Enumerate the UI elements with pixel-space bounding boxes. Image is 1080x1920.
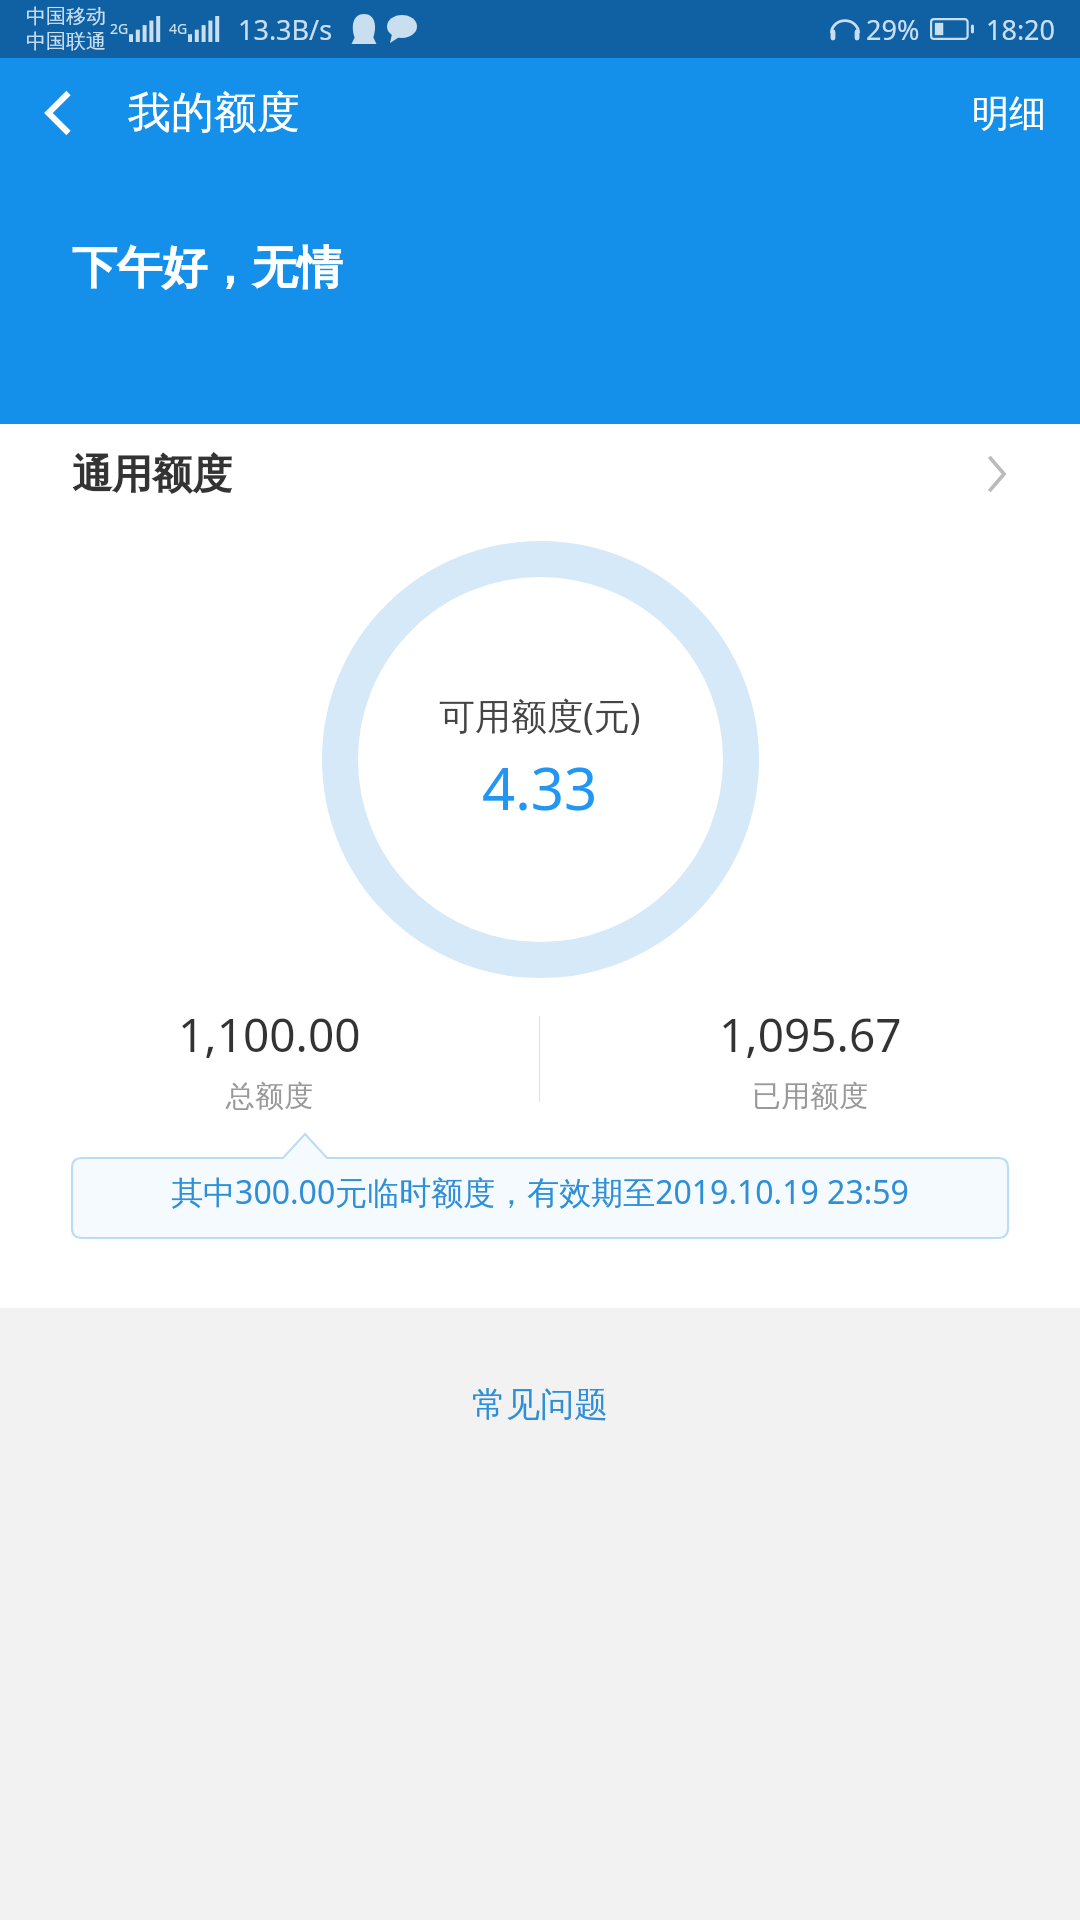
staticText: 13.3B/s [238,11,333,48]
staticText: 我的额度 [128,86,300,140]
staticText: 中国联通 [26,29,106,54]
staticText: 通用额度 [72,449,232,499]
staticText: 常见问题 [472,1383,608,1426]
button[interactable] [0,1134,1080,1238]
staticText: 18:20 [986,11,1056,48]
staticText: 1,095.67 [719,1003,902,1066]
button[interactable]: 返回 [20,75,96,151]
staticText: 可用额度(元) [439,691,641,740]
staticText: 4G [169,19,188,38]
staticText: 总额度 [226,1078,313,1115]
staticText: 29% [866,11,920,48]
staticText: 明细 [972,90,1046,137]
staticText: 下午好，无情 [72,240,342,297]
button[interactable]: 明细 [938,74,1080,153]
button[interactable]: 1,100.00 [0,1003,539,1115]
button[interactable]: 通用额度 [0,424,1080,524]
button[interactable]: 常见问题 [0,1368,1080,1440]
staticText: 2G [110,19,129,38]
staticText: 已用额度 [752,1078,868,1115]
staticText: 中国移动 [26,4,106,29]
button[interactable]: 1,095.67 [540,1003,1080,1115]
staticText: 4.33 [482,748,598,827]
staticText: 其中300.00元临时额度，有效期至2019.10.19 23:59 [171,1170,909,1214]
staticText: 1,100.00 [178,1003,361,1066]
